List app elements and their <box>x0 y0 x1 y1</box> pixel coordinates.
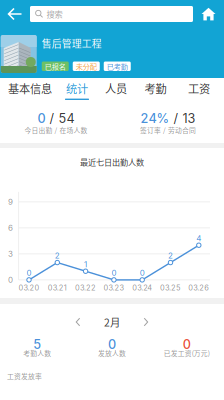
staticText: 0 <box>8 275 13 285</box>
staticText: 工资发放率 <box>7 371 42 381</box>
button[interactable]: Previous month <box>68 308 88 336</box>
staticText: 今日出勤 / 在场人数 <box>24 125 87 135</box>
button[interactable]: 工资 <box>176 78 222 100</box>
staticText: 人员 <box>105 80 127 96</box>
staticText: 03.22 <box>75 283 96 292</box>
staticText: 2 <box>55 251 60 260</box>
staticText: 03.21 <box>48 283 67 292</box>
staticText: 已报名 <box>45 61 66 71</box>
staticText: 03.24 <box>132 283 152 292</box>
staticText: 6 <box>8 223 13 233</box>
staticText: 0 <box>111 268 116 278</box>
staticText: 24% <box>140 111 169 126</box>
staticText: 未分配 <box>76 61 97 71</box>
staticText: 03.20 <box>18 283 39 292</box>
staticText: 工资 <box>188 80 210 96</box>
staticText: 售后管理工程 <box>42 36 102 50</box>
staticText: / 13 <box>169 111 195 126</box>
button[interactable]: 基本信息 <box>3 78 57 100</box>
staticText: 发放人数 <box>98 348 126 358</box>
staticText: 统计 <box>66 80 88 96</box>
staticText: 已发工资(万元) <box>164 348 210 358</box>
button[interactable]: 统计 <box>57 78 97 100</box>
staticText: 0 <box>140 268 145 278</box>
staticText: 0 <box>26 268 31 278</box>
staticText: 3 <box>8 249 13 259</box>
staticText: 0 <box>108 337 116 352</box>
staticText: 搜索 <box>46 8 62 20</box>
staticText: 03.25 <box>160 283 181 292</box>
staticText: 基本信息 <box>8 80 52 96</box>
staticText: 0 <box>37 111 45 126</box>
button[interactable]: Home <box>193 0 224 28</box>
staticText: 考勤 <box>144 80 166 96</box>
staticText: 0 <box>183 337 191 352</box>
staticText: 考勤人数 <box>23 348 51 358</box>
staticText: 签订率 / 劳动合同 <box>140 125 196 135</box>
staticText: 4 <box>196 233 201 243</box>
staticText: 03.23 <box>103 283 124 292</box>
staticText: / 54 <box>45 111 74 126</box>
staticText: 已考勤 <box>107 61 128 71</box>
staticText: 2月 <box>104 314 120 330</box>
button[interactable]: Back <box>0 0 30 28</box>
button[interactable]: Next month <box>136 308 156 336</box>
button[interactable]: 搜索 <box>30 6 193 22</box>
staticText: 9 <box>8 197 13 207</box>
staticText: 5 <box>33 337 41 352</box>
staticText: 最近七日出勤人数 <box>80 156 144 168</box>
button[interactable]: 人员 <box>97 78 135 100</box>
button[interactable]: 考勤 <box>135 78 176 100</box>
staticText: 1 <box>84 259 87 269</box>
staticText: 03.26 <box>188 283 209 292</box>
staticText: 2 <box>168 251 173 260</box>
